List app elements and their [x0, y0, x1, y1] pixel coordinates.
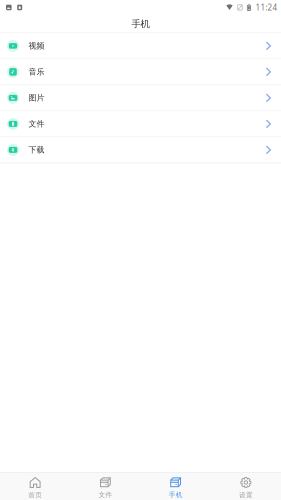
staticText: 设置: [239, 491, 253, 499]
button[interactable]: 下载: [0, 137, 281, 163]
staticText: 下载: [28, 145, 44, 155]
button[interactable]: 文件: [70, 473, 140, 500]
staticText: 手机: [169, 491, 183, 499]
staticText: 图片: [28, 93, 44, 103]
button[interactable]: 图片: [0, 85, 281, 111]
button[interactable]: 文件: [0, 111, 281, 137]
staticText: 手机: [131, 18, 149, 30]
staticText: 11:24: [255, 2, 277, 13]
staticText: 文件: [98, 491, 112, 499]
staticText: 音乐: [28, 67, 44, 77]
button[interactable]: 音乐: [0, 59, 281, 85]
staticText: 首页: [28, 491, 42, 499]
button[interactable]: 首页: [0, 473, 70, 500]
button[interactable]: 手机: [140, 473, 211, 500]
button[interactable]: 视频: [0, 33, 281, 59]
staticText: 文件: [28, 119, 44, 129]
button[interactable]: 设置: [211, 473, 281, 500]
staticText: 视频: [28, 41, 44, 51]
